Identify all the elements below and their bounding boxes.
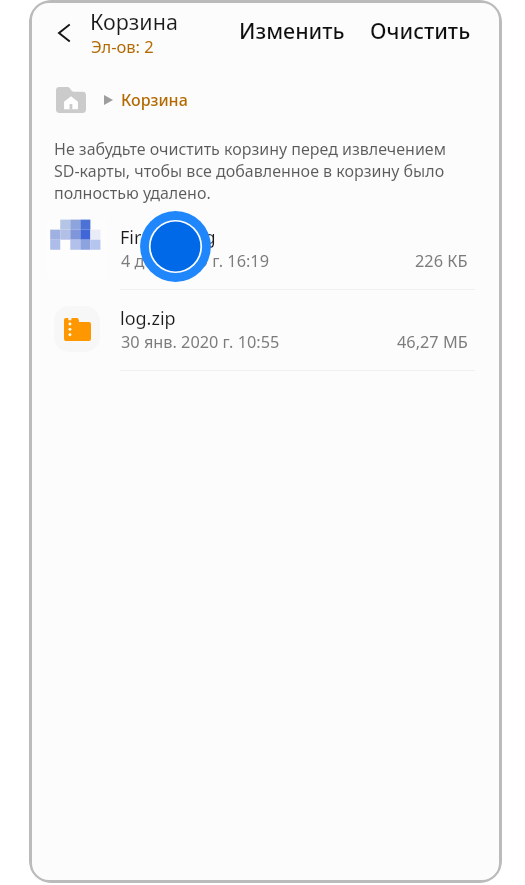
button[interactable]: Очистить xyxy=(362,8,479,53)
staticText: Не забудьте очистить корзину перед извле… xyxy=(54,138,450,204)
staticText: Изменить xyxy=(239,16,345,45)
staticText: 226 КБ xyxy=(415,250,468,272)
button[interactable]: Изменить xyxy=(231,8,353,53)
staticText: Очистить xyxy=(370,16,471,45)
button[interactable]: Home folder xyxy=(50,81,92,119)
staticText: 46,27 МБ xyxy=(397,331,468,353)
staticText: log.zip xyxy=(120,306,176,331)
staticText: Firefox.png xyxy=(120,225,216,250)
staticText: 4 дек. 2019 г. 16:19 xyxy=(121,250,269,272)
staticText: Корзина xyxy=(90,7,178,36)
staticText: 30 янв. 2020 г. 10:55 xyxy=(121,331,280,353)
staticText: Корзина xyxy=(121,89,188,111)
button[interactable]: Back xyxy=(43,12,85,54)
button[interactable]: Корзина xyxy=(115,83,194,117)
staticText: Эл-ов: 2 xyxy=(91,35,154,57)
button[interactable]: Firefox.png xyxy=(29,209,502,290)
button[interactable]: log.zip xyxy=(29,290,502,371)
